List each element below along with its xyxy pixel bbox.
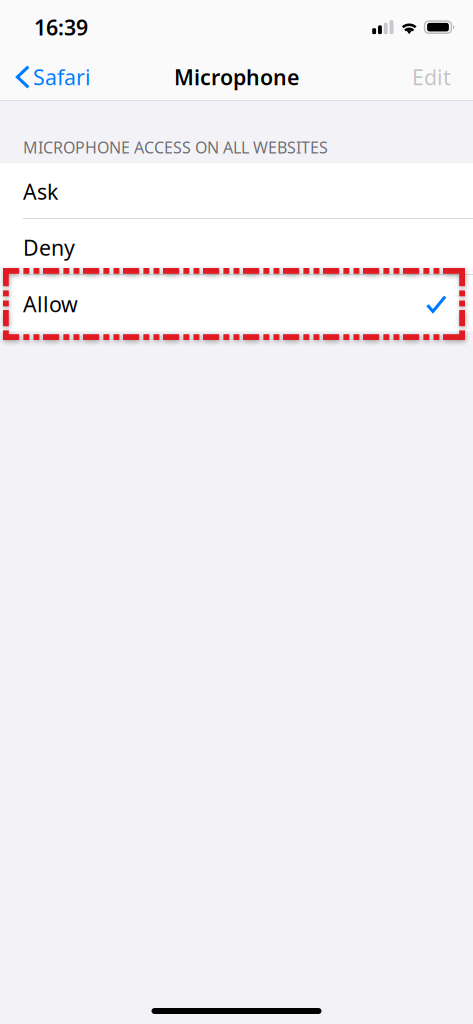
button[interactable]: Edit <box>400 54 473 100</box>
staticText: Edit <box>412 63 451 91</box>
staticText: MICROPHONE ACCESS ON ALL WEBSITES <box>23 137 328 158</box>
button[interactable]: Ask <box>0 163 473 219</box>
button[interactable]: Allow <box>0 275 473 331</box>
button[interactable]: Safari <box>0 54 100 100</box>
staticText: Safari <box>33 63 91 91</box>
staticText: Microphone <box>174 63 299 91</box>
button[interactable]: Deny <box>0 219 473 275</box>
staticText: Ask <box>23 177 58 206</box>
staticText: Deny <box>23 233 75 262</box>
staticText: 16:39 <box>34 13 88 41</box>
staticText: Allow <box>23 290 78 318</box>
